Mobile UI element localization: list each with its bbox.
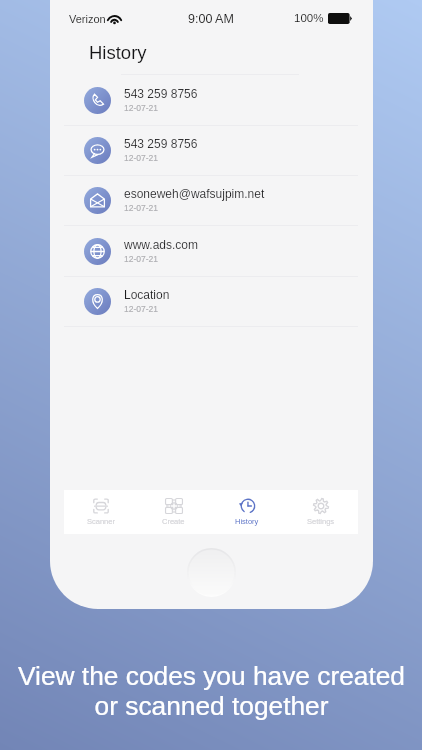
staticText: Scanner	[87, 517, 115, 525]
staticText: 12-07-21	[124, 203, 159, 212]
button[interactable]: esoneweh@wafsujpim.net	[64, 176, 358, 226]
staticText: 12-07-21	[124, 153, 159, 162]
staticText: Settings	[307, 517, 335, 525]
staticText: esoneweh@wafsujpim.net	[124, 187, 265, 200]
staticText: View the codes you have created or scann…	[18, 661, 405, 721]
button[interactable]: History	[210, 490, 284, 534]
staticText: 543 259 8756	[124, 87, 198, 100]
button[interactable]: Create	[137, 490, 210, 534]
staticText: 12-07-21	[124, 254, 159, 263]
staticText: 543 259 8756	[124, 137, 198, 150]
staticText: 12-07-21	[124, 103, 159, 112]
button[interactable]: 543 259 8756	[64, 126, 358, 176]
staticText: Location	[124, 288, 170, 301]
staticText: 100%	[294, 12, 324, 25]
button[interactable]: Settings	[284, 490, 358, 534]
button[interactable]: www.ads.com	[64, 227, 358, 277]
staticText: Verizon	[69, 13, 106, 25]
button[interactable]: Location	[64, 277, 358, 327]
staticText: 9:00 AM	[188, 12, 234, 26]
staticText: www.ads.com	[124, 238, 199, 251]
staticText: Create	[162, 517, 185, 525]
staticText: History	[89, 42, 147, 63]
staticText: 12-07-21	[124, 304, 159, 313]
staticText: History	[235, 517, 259, 525]
button[interactable]: 543 259 8756	[64, 76, 358, 126]
button[interactable]: Scanner	[64, 490, 137, 534]
